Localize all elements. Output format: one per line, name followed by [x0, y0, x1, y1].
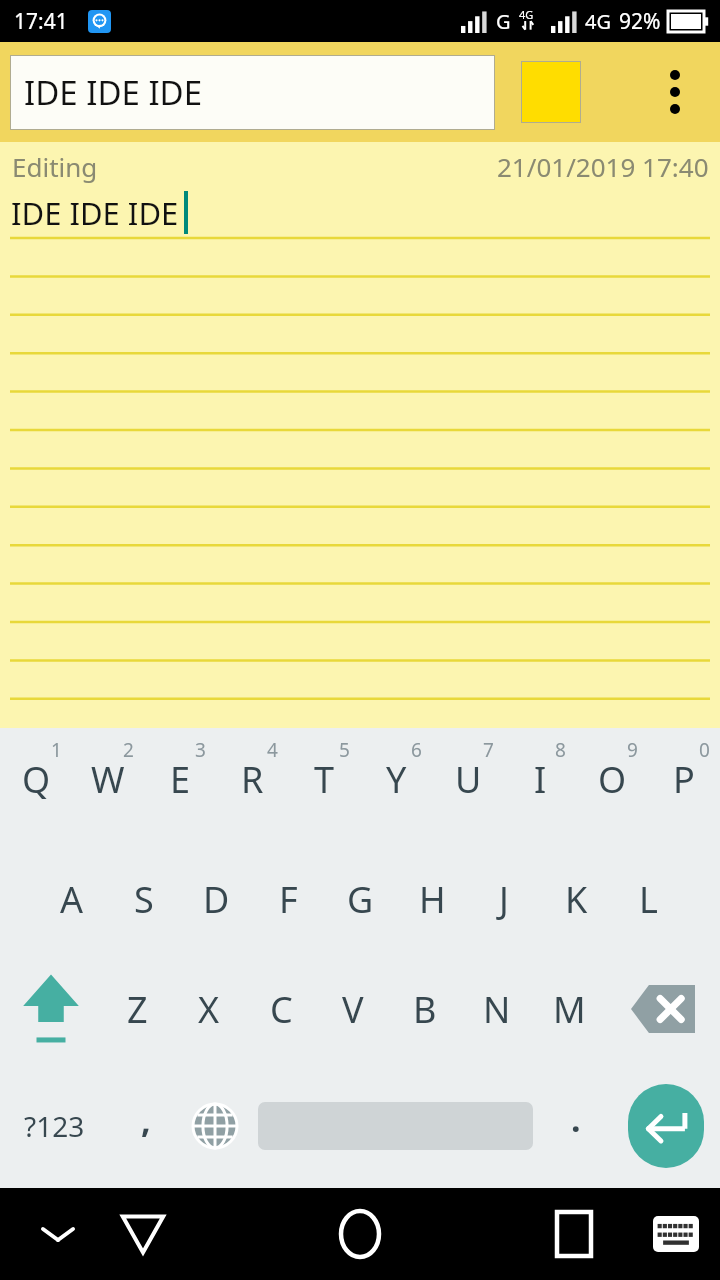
staticText: V: [342, 985, 364, 1034]
button[interactable]: 2: [72, 728, 144, 844]
button[interactable]: X: [173, 954, 245, 1064]
staticText: J: [499, 875, 509, 924]
button[interactable]: G: [324, 844, 396, 954]
button[interactable]: 7: [432, 728, 504, 844]
button[interactable]: Z: [101, 954, 173, 1064]
button[interactable]: Change language: [186, 1086, 244, 1166]
button[interactable]: 1: [0, 728, 72, 844]
button[interactable]: H: [396, 844, 468, 954]
staticText: C: [270, 985, 293, 1034]
staticText: D: [203, 875, 230, 924]
button[interactable]: 6: [360, 728, 432, 844]
staticText: 1: [51, 737, 62, 763]
button[interactable]: More options: [630, 42, 720, 142]
button[interactable]: J: [468, 844, 540, 954]
staticText: 3: [195, 737, 206, 763]
staticText: 4G: [519, 7, 534, 22]
staticText: 5: [339, 737, 350, 763]
staticText: 9: [627, 737, 638, 763]
button[interactable]: .: [548, 1086, 604, 1166]
staticText: 0: [699, 737, 710, 763]
button[interactable]: B: [389, 954, 461, 1064]
button[interactable]: S: [108, 844, 180, 954]
staticText: 4G: [585, 8, 611, 35]
staticText: G: [496, 8, 511, 35]
button[interactable]: Backspace: [605, 954, 720, 1064]
staticText: 7: [483, 737, 494, 763]
button[interactable]: Switch keyboard: [640, 1198, 712, 1270]
staticText: Y: [386, 755, 407, 804]
button[interactable]: Enter: [628, 1084, 704, 1168]
staticText: L: [639, 875, 658, 924]
staticText: IDE IDE IDE: [11, 192, 179, 234]
staticText: ,: [141, 1097, 151, 1143]
staticText: 6: [411, 737, 422, 763]
staticText: R: [241, 755, 264, 804]
button[interactable]: IDE IDE IDE: [10, 55, 495, 130]
button[interactable]: Recent apps: [535, 1195, 613, 1273]
button[interactable]: 8: [504, 728, 576, 844]
staticText: .: [571, 1096, 581, 1142]
staticText: E: [170, 755, 191, 804]
staticText: Editing: [12, 149, 98, 184]
staticText: ?123: [24, 1107, 85, 1145]
staticText: T: [314, 755, 335, 804]
button[interactable]: D: [180, 844, 252, 954]
staticText: IDE IDE IDE: [24, 70, 203, 115]
staticText: M: [553, 985, 586, 1034]
staticText: U: [455, 755, 482, 804]
button[interactable]: M: [533, 954, 605, 1064]
button[interactable]: ?123: [14, 1086, 94, 1166]
staticText: 17:41: [14, 7, 68, 36]
staticText: 4: [267, 737, 278, 763]
staticText: Q: [22, 755, 51, 804]
button[interactable]: 9: [576, 728, 648, 844]
staticText: O: [598, 755, 627, 804]
staticText: A: [60, 875, 84, 924]
staticText: W: [91, 755, 125, 804]
staticText: 2: [123, 737, 134, 763]
button[interactable]: 5: [288, 728, 360, 844]
button[interactable]: ,: [118, 1086, 174, 1166]
button[interactable]: K: [540, 844, 612, 954]
staticText: H: [419, 875, 446, 924]
staticText: K: [565, 875, 588, 924]
button[interactable]: 3: [144, 728, 216, 844]
staticText: P: [673, 755, 695, 804]
staticText: B: [413, 985, 437, 1034]
staticText: 21/01/2019 17:40: [497, 149, 709, 184]
button[interactable]: Shift: [0, 954, 101, 1064]
button[interactable]: A: [36, 844, 108, 954]
button[interactable]: Note colour: [521, 61, 581, 123]
staticText: 92%: [619, 7, 661, 36]
staticText: F: [279, 875, 298, 924]
staticText: S: [134, 875, 154, 924]
button[interactable]: N: [461, 954, 533, 1064]
button[interactable]: L: [612, 844, 684, 954]
button[interactable]: Hide keyboard: [22, 1198, 94, 1270]
button[interactable]: C: [245, 954, 317, 1064]
button[interactable]: Home: [318, 1192, 402, 1276]
staticText: X: [198, 985, 220, 1034]
staticText: Z: [127, 985, 148, 1034]
staticText: I: [534, 755, 547, 804]
button[interactable]: 0: [648, 728, 720, 844]
staticText: 8: [555, 737, 566, 763]
button[interactable]: V: [317, 954, 389, 1064]
button[interactable]: Back: [107, 1198, 179, 1270]
button[interactable]: 4: [216, 728, 288, 844]
button[interactable]: IDE IDE IDE: [0, 190, 720, 728]
button[interactable]: F: [252, 844, 324, 954]
staticText: G: [347, 875, 374, 924]
staticText: N: [483, 985, 511, 1034]
